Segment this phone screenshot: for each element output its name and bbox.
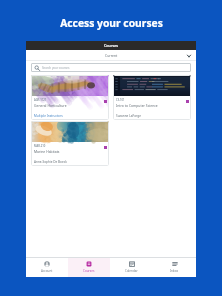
- staticText: General Horticulture: [34, 103, 67, 108]
- staticText: Inbox: [170, 269, 179, 273]
- staticText: Access your courses: [60, 16, 163, 30]
- staticText: Marine Habitats: [34, 149, 60, 154]
- button[interactable]: Courses: [26, 41, 196, 50]
- button[interactable]: Favorite: [103, 145, 107, 149]
- staticText: Current: [105, 53, 118, 58]
- staticText: Suzanne LaForge: [116, 114, 141, 118]
- other: Calendar: [129, 261, 135, 267]
- button[interactable]: Current: [26, 50, 196, 61]
- button[interactable]: Favorite: [185, 99, 189, 103]
- button[interactable]: Courses: [68, 257, 110, 277]
- button[interactable]: CS-101: [113, 75, 191, 120]
- staticText: Intro to Computer Science: [116, 103, 158, 108]
- button[interactable]: AGR-1121: [31, 75, 109, 120]
- button[interactable]: Search your courses: [31, 63, 191, 72]
- staticText: Calendar: [125, 269, 138, 273]
- other: Account: [44, 261, 50, 267]
- other: Courses: [86, 261, 92, 267]
- button[interactable]: MAR-210: [31, 121, 109, 166]
- staticText: Account: [41, 269, 53, 273]
- button[interactable]: Inbox: [153, 257, 196, 277]
- staticText: CS-101: [116, 98, 125, 102]
- staticText: AGR-1121: [34, 98, 47, 102]
- button[interactable]: Calendar: [110, 257, 153, 277]
- staticText: Search your courses: [42, 66, 70, 70]
- staticText: Multiple Instructors: [34, 114, 63, 118]
- button[interactable]: Favorite: [103, 99, 107, 103]
- button[interactable]: Account: [26, 257, 68, 277]
- staticText: Anne-Sophie De Boeck: [34, 160, 67, 164]
- staticText: Courses: [83, 269, 95, 273]
- other: Expand term: [186, 53, 192, 59]
- staticText: MAR-210: [34, 144, 46, 148]
- staticText: Courses: [104, 43, 119, 48]
- other: Inbox: [172, 261, 178, 267]
